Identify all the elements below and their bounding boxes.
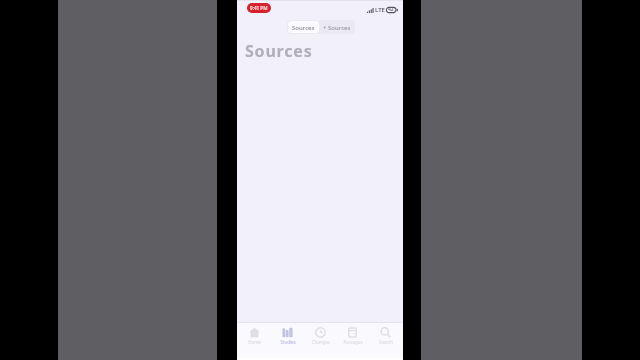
staticText: Changes	[312, 339, 330, 345]
button[interactable]: Search	[370, 323, 401, 360]
staticText: Home	[248, 339, 261, 345]
button[interactable]: Sources	[288, 21, 319, 33]
staticText: + Sources	[323, 24, 351, 32]
staticText: LTE	[375, 6, 385, 14]
button[interactable]: Passages	[337, 323, 368, 360]
staticText: Sources	[245, 40, 313, 62]
staticText: Studies	[280, 339, 296, 345]
staticText: Sources	[292, 24, 315, 32]
staticText: 9:41 PM	[250, 5, 268, 11]
staticText: Passages	[343, 339, 363, 345]
button[interactable]: + Sources	[319, 21, 354, 33]
staticText: Search	[379, 339, 393, 345]
button[interactable]: Studies	[272, 323, 303, 360]
button[interactable]: Changes	[305, 323, 336, 360]
button[interactable]: Recording indicator	[247, 3, 271, 13]
staticText: 42	[388, 6, 394, 13]
button[interactable]: Home	[239, 323, 270, 360]
